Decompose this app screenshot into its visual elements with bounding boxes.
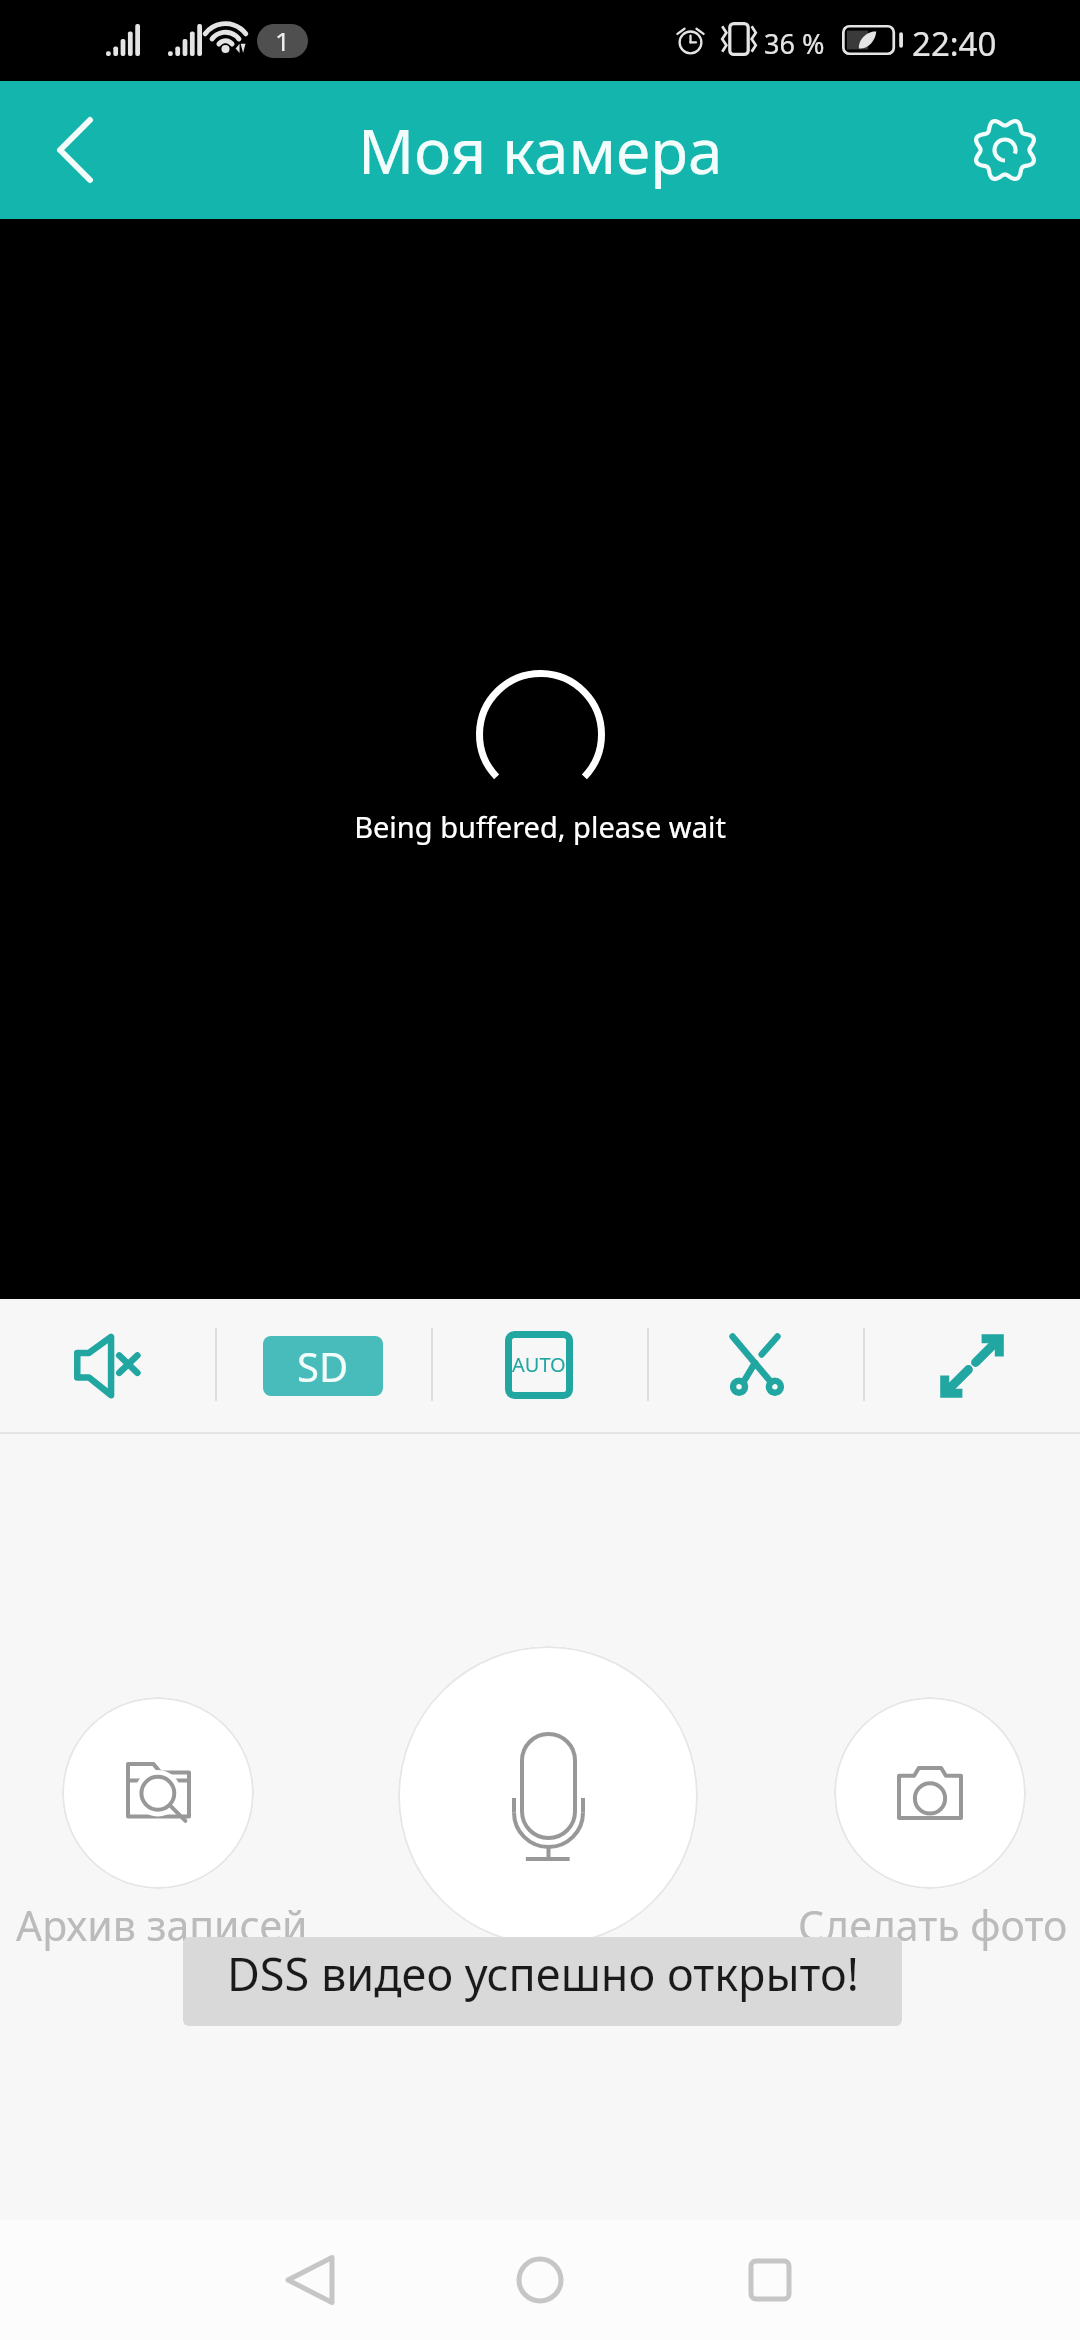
button[interactable]: Settings — [930, 81, 1080, 219]
button[interactable]: Home — [470, 2220, 610, 2340]
button[interactable]: Recents — [700, 2220, 840, 2340]
staticText: DSS видео успешно открыто! — [227, 1943, 859, 2004]
button[interactable]: Fullscreen — [912, 1299, 1032, 1432]
staticText: 1 — [275, 24, 290, 57]
staticText: SD — [297, 1339, 349, 1393]
button[interactable]: Back — [0, 81, 150, 219]
staticText: 36 % — [764, 25, 825, 62]
staticText: Моя камера — [358, 108, 723, 192]
staticText: Сделать фото — [798, 1897, 1068, 1953]
button[interactable]: Take photo — [834, 1697, 1026, 1889]
staticText: 22:40 — [912, 21, 997, 66]
staticText: AUTO — [512, 1351, 566, 1378]
button[interactable]: Archive — [62, 1697, 254, 1889]
button[interactable]: Auto — [495, 1299, 583, 1432]
button[interactable]: Back — [240, 2220, 380, 2340]
staticText: Архив записей — [16, 1897, 308, 1953]
button[interactable]: Quality SD — [248, 1324, 398, 1408]
staticText: Being buffered, please wait — [0, 807, 1080, 846]
button[interactable]: Record — [398, 1646, 698, 1946]
button[interactable]: Clip — [697, 1299, 813, 1432]
button[interactable]: Mute — [45, 1299, 170, 1432]
